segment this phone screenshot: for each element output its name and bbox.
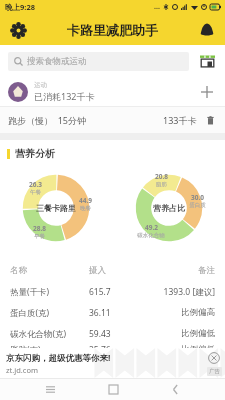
staticText: 脂肪(克) (10, 344, 89, 348)
staticText: 备注 (148, 265, 215, 276)
staticText: 蛋白质 (189, 202, 206, 209)
staticText: 广告 (209, 368, 220, 375)
staticText: 营养占比 (153, 203, 185, 213)
staticText: 49.2 (145, 223, 158, 232)
button[interactable]: Back (162, 378, 188, 400)
staticText: 早餐 (34, 233, 45, 240)
staticText: 比例偏低 (148, 344, 215, 348)
staticText: 三餐卡路里 (36, 203, 76, 213)
staticText: 36.11 (89, 307, 148, 319)
staticText: 京东闪购，超级优惠等你来! (6, 352, 111, 364)
staticText: 卡路里减肥助手 (67, 22, 158, 38)
staticText: 碳水化合物(克) (10, 328, 89, 340)
button[interactable]: Notifications (196, 19, 218, 41)
staticText: 44.9 (79, 196, 92, 205)
staticText: 午餐 (30, 189, 41, 196)
staticText: 比例偏高 (148, 307, 215, 318)
button[interactable]: Delete (203, 113, 217, 127)
staticText: 59.43 (89, 328, 148, 340)
button[interactable]: Recents (37, 378, 63, 400)
staticText: 133千卡 (163, 114, 197, 126)
staticText: 25.76 (89, 344, 148, 348)
staticText: zt.jd.com (6, 365, 38, 375)
staticText: 蛋白质(克) (10, 307, 89, 319)
staticText: 营养分析 (15, 147, 55, 160)
staticText: 26.3 (29, 180, 42, 189)
staticText: 摄入 (89, 265, 148, 276)
staticText: 热量(千卡) (10, 286, 89, 298)
staticText: 20.8 (155, 172, 168, 181)
staticText: 28.8 (33, 224, 46, 233)
button[interactable]: 京东闪购，超级优惠等你来! (0, 348, 225, 378)
staticText: 搜索食物或运动 (27, 56, 87, 67)
staticText: 脂肪 (156, 181, 167, 188)
button[interactable]: Home (100, 378, 126, 400)
staticText: 30.0 (191, 193, 204, 202)
staticText: 碳水化合物 (137, 232, 165, 239)
button[interactable]: Add exercise (197, 82, 217, 102)
button[interactable]: Shop (197, 51, 217, 71)
staticText: 615.7 (89, 286, 148, 298)
staticText: 比例偏低 (148, 328, 215, 339)
button[interactable]: Settings (7, 19, 29, 41)
staticText: 跑步（慢） 15分钟 (8, 114, 163, 126)
button[interactable]: 搜索食物或运动 (8, 52, 189, 71)
staticText: 运动 (34, 81, 47, 89)
button[interactable]: 运动 (0, 77, 225, 106)
staticText: 1393.0 [建议] (148, 286, 215, 298)
staticText: 名称 (10, 265, 89, 276)
staticText: 晚上9:28 (5, 2, 35, 12)
staticText: 晚餐 (80, 205, 91, 212)
button[interactable]: 跑步（慢） 15分钟 (0, 107, 225, 133)
staticText: 已消耗132千卡 (34, 90, 95, 102)
button[interactable]: Close ad (208, 352, 220, 364)
staticText: ... (154, 2, 160, 12)
